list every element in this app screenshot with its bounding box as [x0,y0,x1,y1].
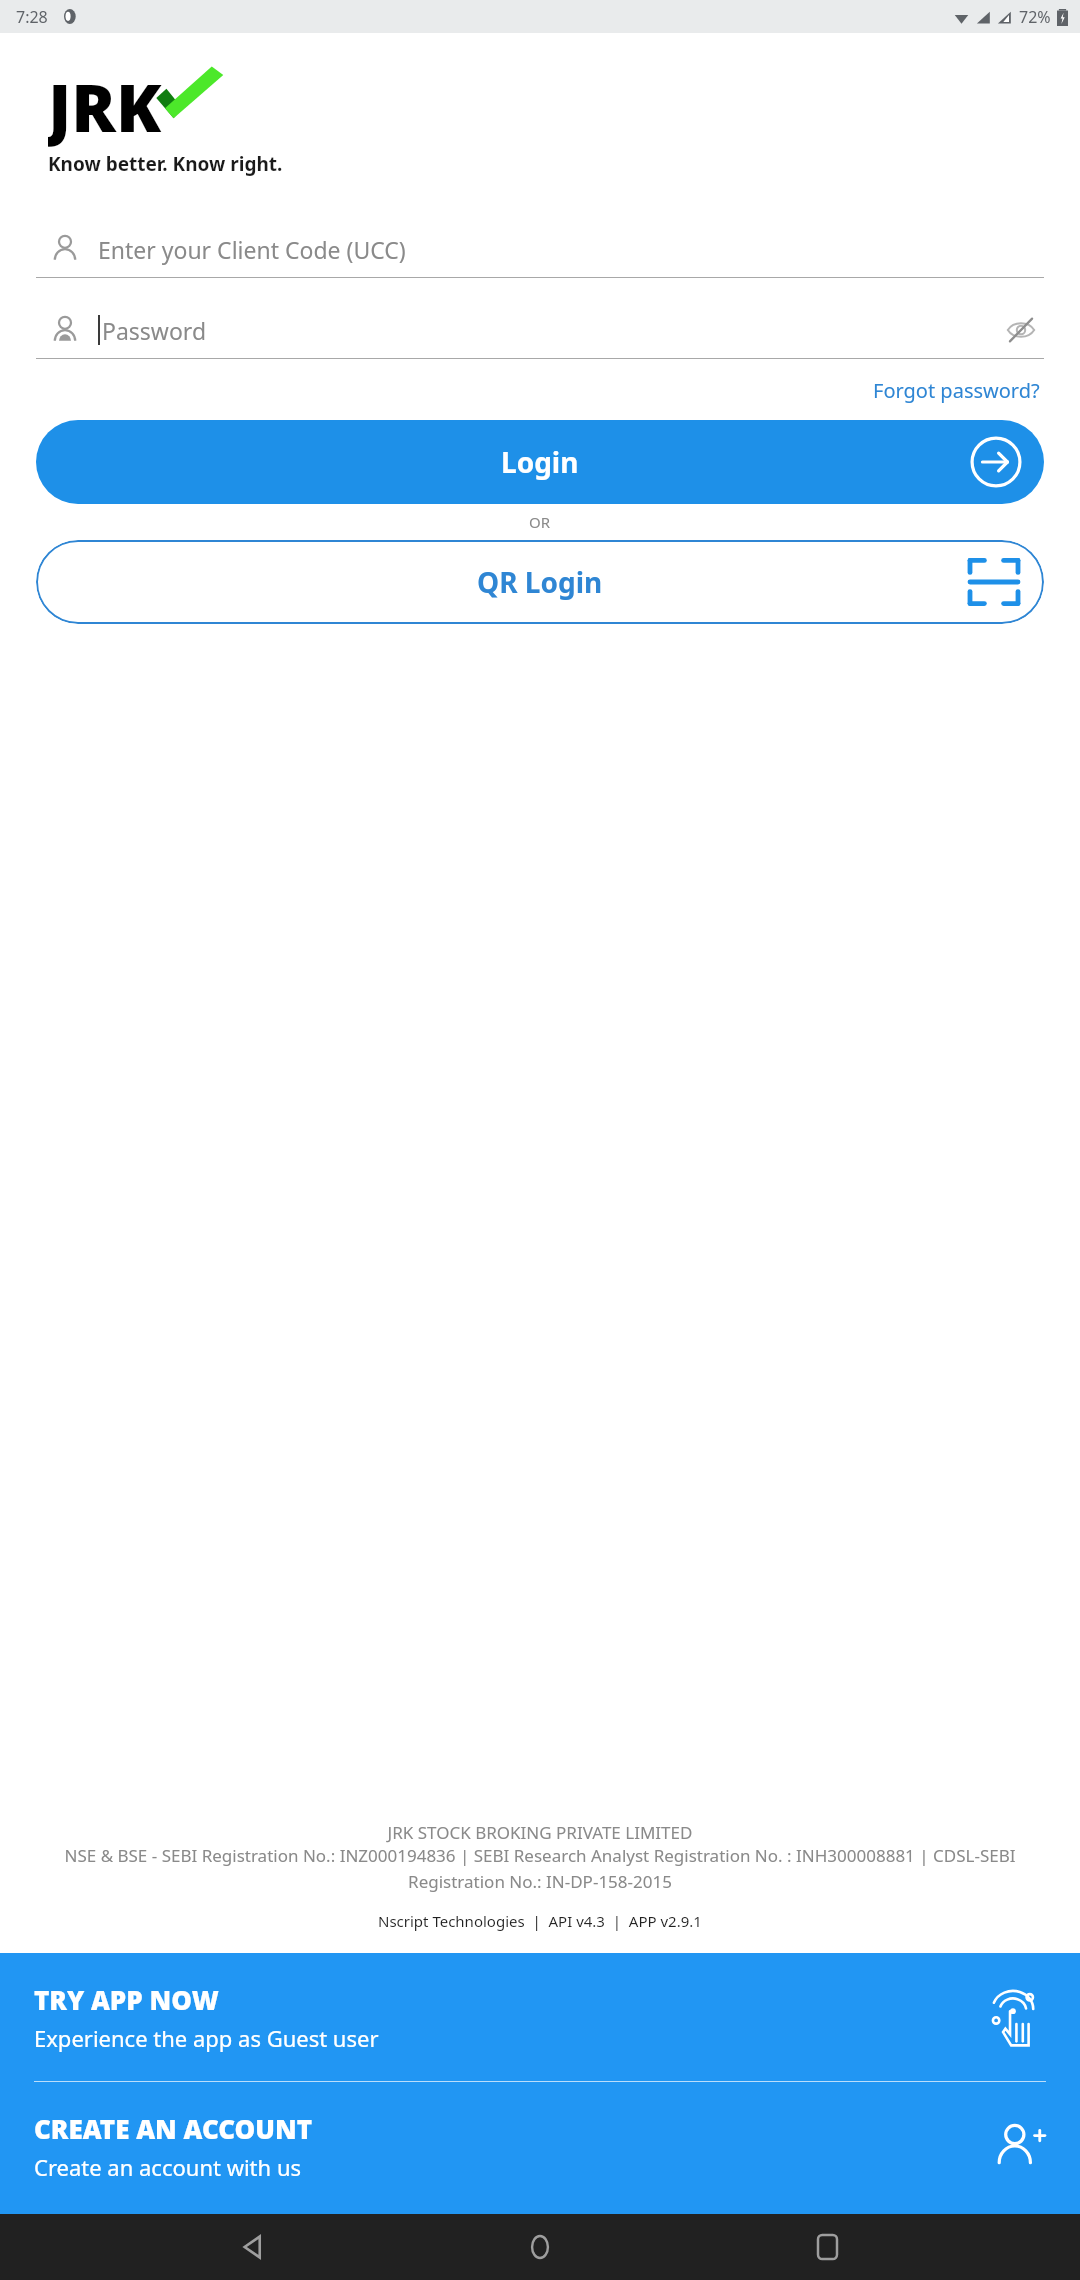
staticText: NSE & BSE - SEBI Registration No.: INZ00… [30,1844,1050,1893]
staticText: QR Login [477,563,603,601]
button[interactable]: Show password [998,307,1044,353]
staticText: Nscript Technologies | API v4.3 | APP v2… [378,1911,702,1931]
button[interactable]: Enter your Client Code (UCC) [36,221,1044,277]
staticText: 7:28 [16,6,48,28]
button[interactable]: Home [507,2214,573,2280]
staticText: Enter your Client Code (UCC) [98,234,1044,265]
staticText: TRY APP NOW [34,1982,219,2017]
staticText: CREATE AN ACCOUNT [34,2111,313,2146]
staticText: Experience the app as Guest user [34,2023,379,2053]
staticText: Create an account with us [34,2152,302,2182]
button[interactable]: Back [221,2214,287,2280]
staticText: JRK STOCK BROKING PRIVATE LIMITED [30,1821,1050,1844]
staticText: JRK [48,61,162,149]
button[interactable]: Login [36,420,1044,504]
button[interactable]: Forgot password? [869,373,1044,408]
staticText: Password [102,315,998,346]
staticText: Know better. Know right. [48,151,283,177]
button[interactable]: Password [36,302,1044,358]
staticText: OR [529,512,551,532]
button[interactable]: CREATE AN ACCOUNT [0,2082,1080,2210]
staticText: Forgot password? [873,377,1040,404]
staticText: Login [501,443,579,481]
button[interactable]: Recent apps [794,2214,860,2280]
button[interactable]: TRY APP NOW [0,1953,1080,2081]
button[interactable]: QR Login [36,540,1044,624]
staticText: 72% [1019,6,1051,28]
